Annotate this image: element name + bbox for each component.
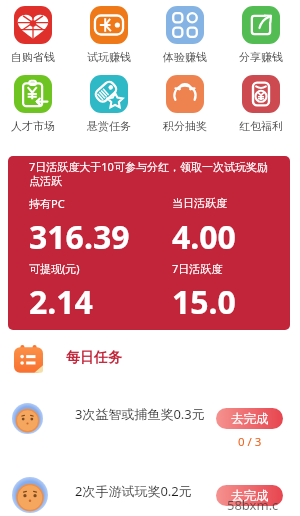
staticText: 0 / 3 — [238, 434, 262, 450]
staticText: 去完成 — [231, 411, 269, 427]
button[interactable] — [90, 75, 128, 113]
button[interactable]: 去完成 — [216, 485, 283, 506]
button[interactable] — [166, 75, 204, 113]
staticText: 316.39 — [29, 215, 130, 259]
staticText: 积分抽奖 — [163, 119, 207, 133]
button[interactable] — [242, 6, 280, 44]
staticText: 分享赚钱 — [239, 50, 283, 64]
staticText: 点活跃 — [29, 174, 62, 188]
staticText: 7日活跃度大于10可参与分红，领取一次试玩奖励 — [29, 159, 268, 174]
staticText: 58bxm.c — [227, 496, 279, 514]
button[interactable] — [14, 75, 52, 113]
button[interactable] — [90, 6, 128, 44]
staticText: 当日活跃度 — [172, 196, 227, 210]
staticText: 可提现(元) — [29, 261, 80, 276]
staticText: 人才市场 — [11, 119, 55, 133]
staticText: 3次益智或捕鱼奖0.3元 — [75, 405, 205, 423]
staticText: 持有PC — [29, 196, 65, 211]
staticText: 去完成 — [231, 488, 269, 504]
button[interactable]: 7日活跃度大于10可参与分红，领取一次试玩奖励 — [8, 156, 290, 330]
staticText: 4.00 — [172, 215, 236, 259]
staticText: 每日任务 — [66, 349, 122, 367]
button[interactable] — [14, 6, 52, 44]
staticText: 体验赚钱 — [163, 50, 207, 64]
staticText: 2.14 — [29, 280, 93, 324]
staticText: 红包福利 — [239, 119, 283, 133]
staticText: 悬赏任务 — [87, 119, 131, 133]
staticText: 自购省钱 — [11, 50, 55, 64]
staticText: 试玩赚钱 — [87, 50, 131, 64]
button[interactable] — [242, 75, 280, 113]
staticText: 2次手游试玩奖0.2元 — [75, 482, 192, 500]
staticText: 15.0 — [172, 280, 236, 324]
button[interactable]: 去完成 — [216, 408, 283, 429]
button[interactable] — [166, 6, 204, 44]
staticText: 7日活跃度 — [172, 261, 223, 276]
